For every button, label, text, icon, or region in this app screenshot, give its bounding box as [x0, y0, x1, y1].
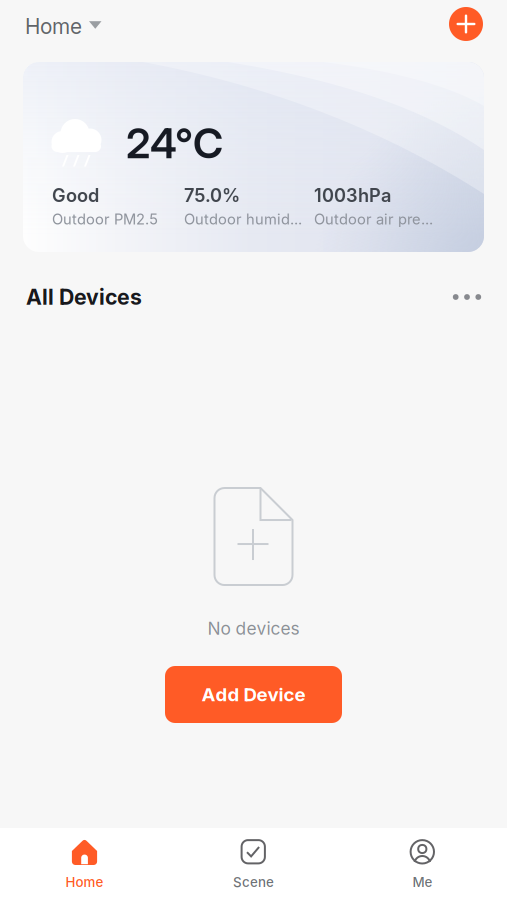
staticText: Scene [233, 874, 274, 890]
button[interactable]: Home [25, 6, 101, 47]
button[interactable]: More [445, 280, 489, 314]
staticText: Home [65, 874, 103, 890]
staticText: No devices [207, 618, 299, 639]
button[interactable]: Add device [446, 4, 486, 49]
staticText: Home [25, 14, 82, 39]
staticText: Outdoor humid... [184, 210, 302, 228]
staticText: Good [52, 184, 99, 206]
staticText: Outdoor PM2.5 [52, 210, 158, 228]
staticText: 24°C [126, 118, 223, 168]
staticText: 75.0% [184, 184, 240, 206]
staticText: Me [412, 874, 432, 890]
staticText: All Devices [26, 284, 142, 310]
staticText: 1003hPa [314, 184, 391, 206]
button[interactable]: Home [0, 828, 169, 900]
button[interactable]: Me [338, 828, 507, 900]
staticText: Add Device [201, 683, 305, 706]
button[interactable]: Add Device [165, 666, 342, 723]
button[interactable]: Scene [169, 828, 338, 900]
staticText: Outdoor air pre... [314, 210, 433, 228]
